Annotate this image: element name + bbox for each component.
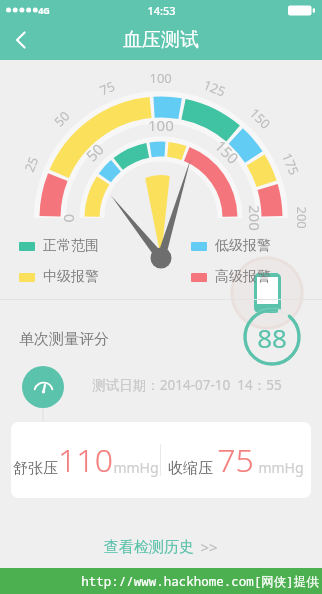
staticText: 单次测量评分 [19, 330, 109, 349]
staticText: 110 [58, 438, 113, 482]
staticText: 测试日期：2014-07-10 14：55 [92, 376, 282, 394]
staticText: 舒张压 [13, 459, 58, 478]
button[interactable]: 中级报警 [19, 268, 191, 286]
staticText: 14:53 [147, 3, 176, 18]
staticText: 血压测试 [123, 28, 199, 52]
staticText: 正常范围 [43, 237, 99, 255]
button[interactable]: Measurement score [22, 366, 64, 408]
staticText: mmHg [113, 458, 159, 477]
staticText: 查看检测历史 [104, 538, 194, 557]
button[interactable]: 高级报警 [191, 268, 271, 286]
button[interactable]: 正常范围 [19, 237, 191, 255]
staticText: 88 [257, 320, 287, 355]
button[interactable]: 舒张压 [11, 422, 311, 498]
button[interactable]: 查看检测历史 [0, 526, 322, 568]
staticText: http://www.hackhome.com[网侠]提供 [81, 573, 319, 590]
staticText: 低级报警 [215, 237, 271, 255]
staticText: 4G [38, 4, 50, 16]
staticText: 高级报警 [215, 268, 271, 286]
staticText: 中级报警 [43, 268, 99, 286]
staticText: 收缩压 [168, 459, 213, 478]
staticText: mmHg [258, 458, 304, 477]
button[interactable]: 低级报警 [191, 237, 271, 255]
staticText: 75 [217, 438, 254, 482]
button[interactable]: 88 [243, 308, 301, 366]
button[interactable]: Back [0, 20, 42, 60]
staticText: >> [200, 537, 218, 557]
